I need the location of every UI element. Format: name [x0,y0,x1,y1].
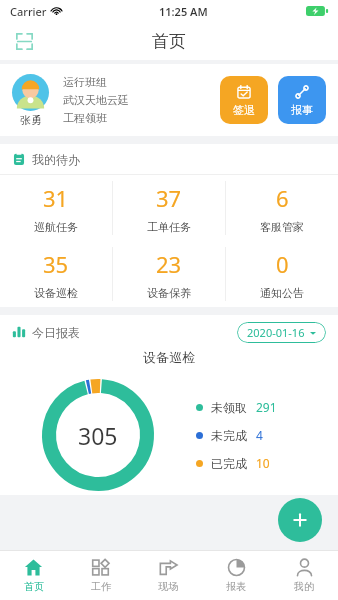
button[interactable]: 未领取 [196,399,277,415]
staticText: 报事 [291,103,313,117]
staticText: 设备保养 [147,286,191,300]
button[interactable]: 23 [113,241,225,307]
staticText: 2020-01-16 [247,325,305,340]
button[interactable]: 31 [0,175,112,241]
staticText: 张勇 [20,113,42,127]
button[interactable]: 37 [113,175,225,241]
staticText: 4 [256,427,263,443]
staticText: 37 [156,183,182,213]
staticText: 11:25 AM [159,4,208,19]
staticText: 305 [78,420,118,451]
button[interactable]: Scan QR code [10,27,38,55]
staticText: 通知公告 [260,286,304,300]
button[interactable]: 工作 [67,551,134,600]
button[interactable]: 2020-01-16 [247,325,316,340]
staticText: 首页 [152,31,186,52]
staticText: 设备巡检 [0,349,338,365]
staticText: 设备巡检 [34,286,78,300]
staticText: 工程领班 [63,111,107,125]
staticText: 35 [43,249,69,279]
staticText: 运行班组 [63,75,107,89]
button[interactable]: 0 [226,241,338,307]
button[interactable]: 现场 [134,551,202,600]
staticText: 武汉天地云廷 [63,93,129,107]
button[interactable]: 首页 [0,551,67,600]
button[interactable]: 已完成 [196,455,270,471]
staticText: 今日报表 [32,325,80,340]
staticText: 现场 [158,580,178,593]
staticText: 291 [256,399,277,415]
staticText: 31 [43,183,69,213]
staticText: 我的 [294,580,314,593]
staticText: 工作 [91,580,111,593]
staticText: 签退 [233,103,255,117]
button[interactable]: 签退 [220,76,268,124]
staticText: 未领取 [211,400,247,415]
staticText: Carrier [10,4,47,19]
staticText: 工单任务 [147,220,191,234]
button[interactable]: 报事 [278,76,326,124]
staticText: 客服管家 [260,220,304,234]
button[interactable]: 6 [226,175,338,241]
button[interactable]: 我的 [270,551,338,600]
staticText: 已完成 [211,456,247,471]
button[interactable]: 报表 [202,551,270,600]
button[interactable]: 35 [0,241,112,307]
staticText: 我的待办 [32,152,80,167]
button[interactable]: 张勇 [12,64,326,136]
staticText: 报表 [226,580,246,593]
button[interactable]: Add new item [278,498,322,542]
staticText: 巡航任务 [34,220,78,234]
staticText: 23 [156,249,182,279]
staticText: 未完成 [211,428,247,443]
staticText: 6 [276,183,289,213]
staticText: 0 [276,249,289,279]
button[interactable]: 未完成 [196,427,263,443]
staticText: 10 [256,455,270,471]
staticText: 首页 [24,580,44,593]
